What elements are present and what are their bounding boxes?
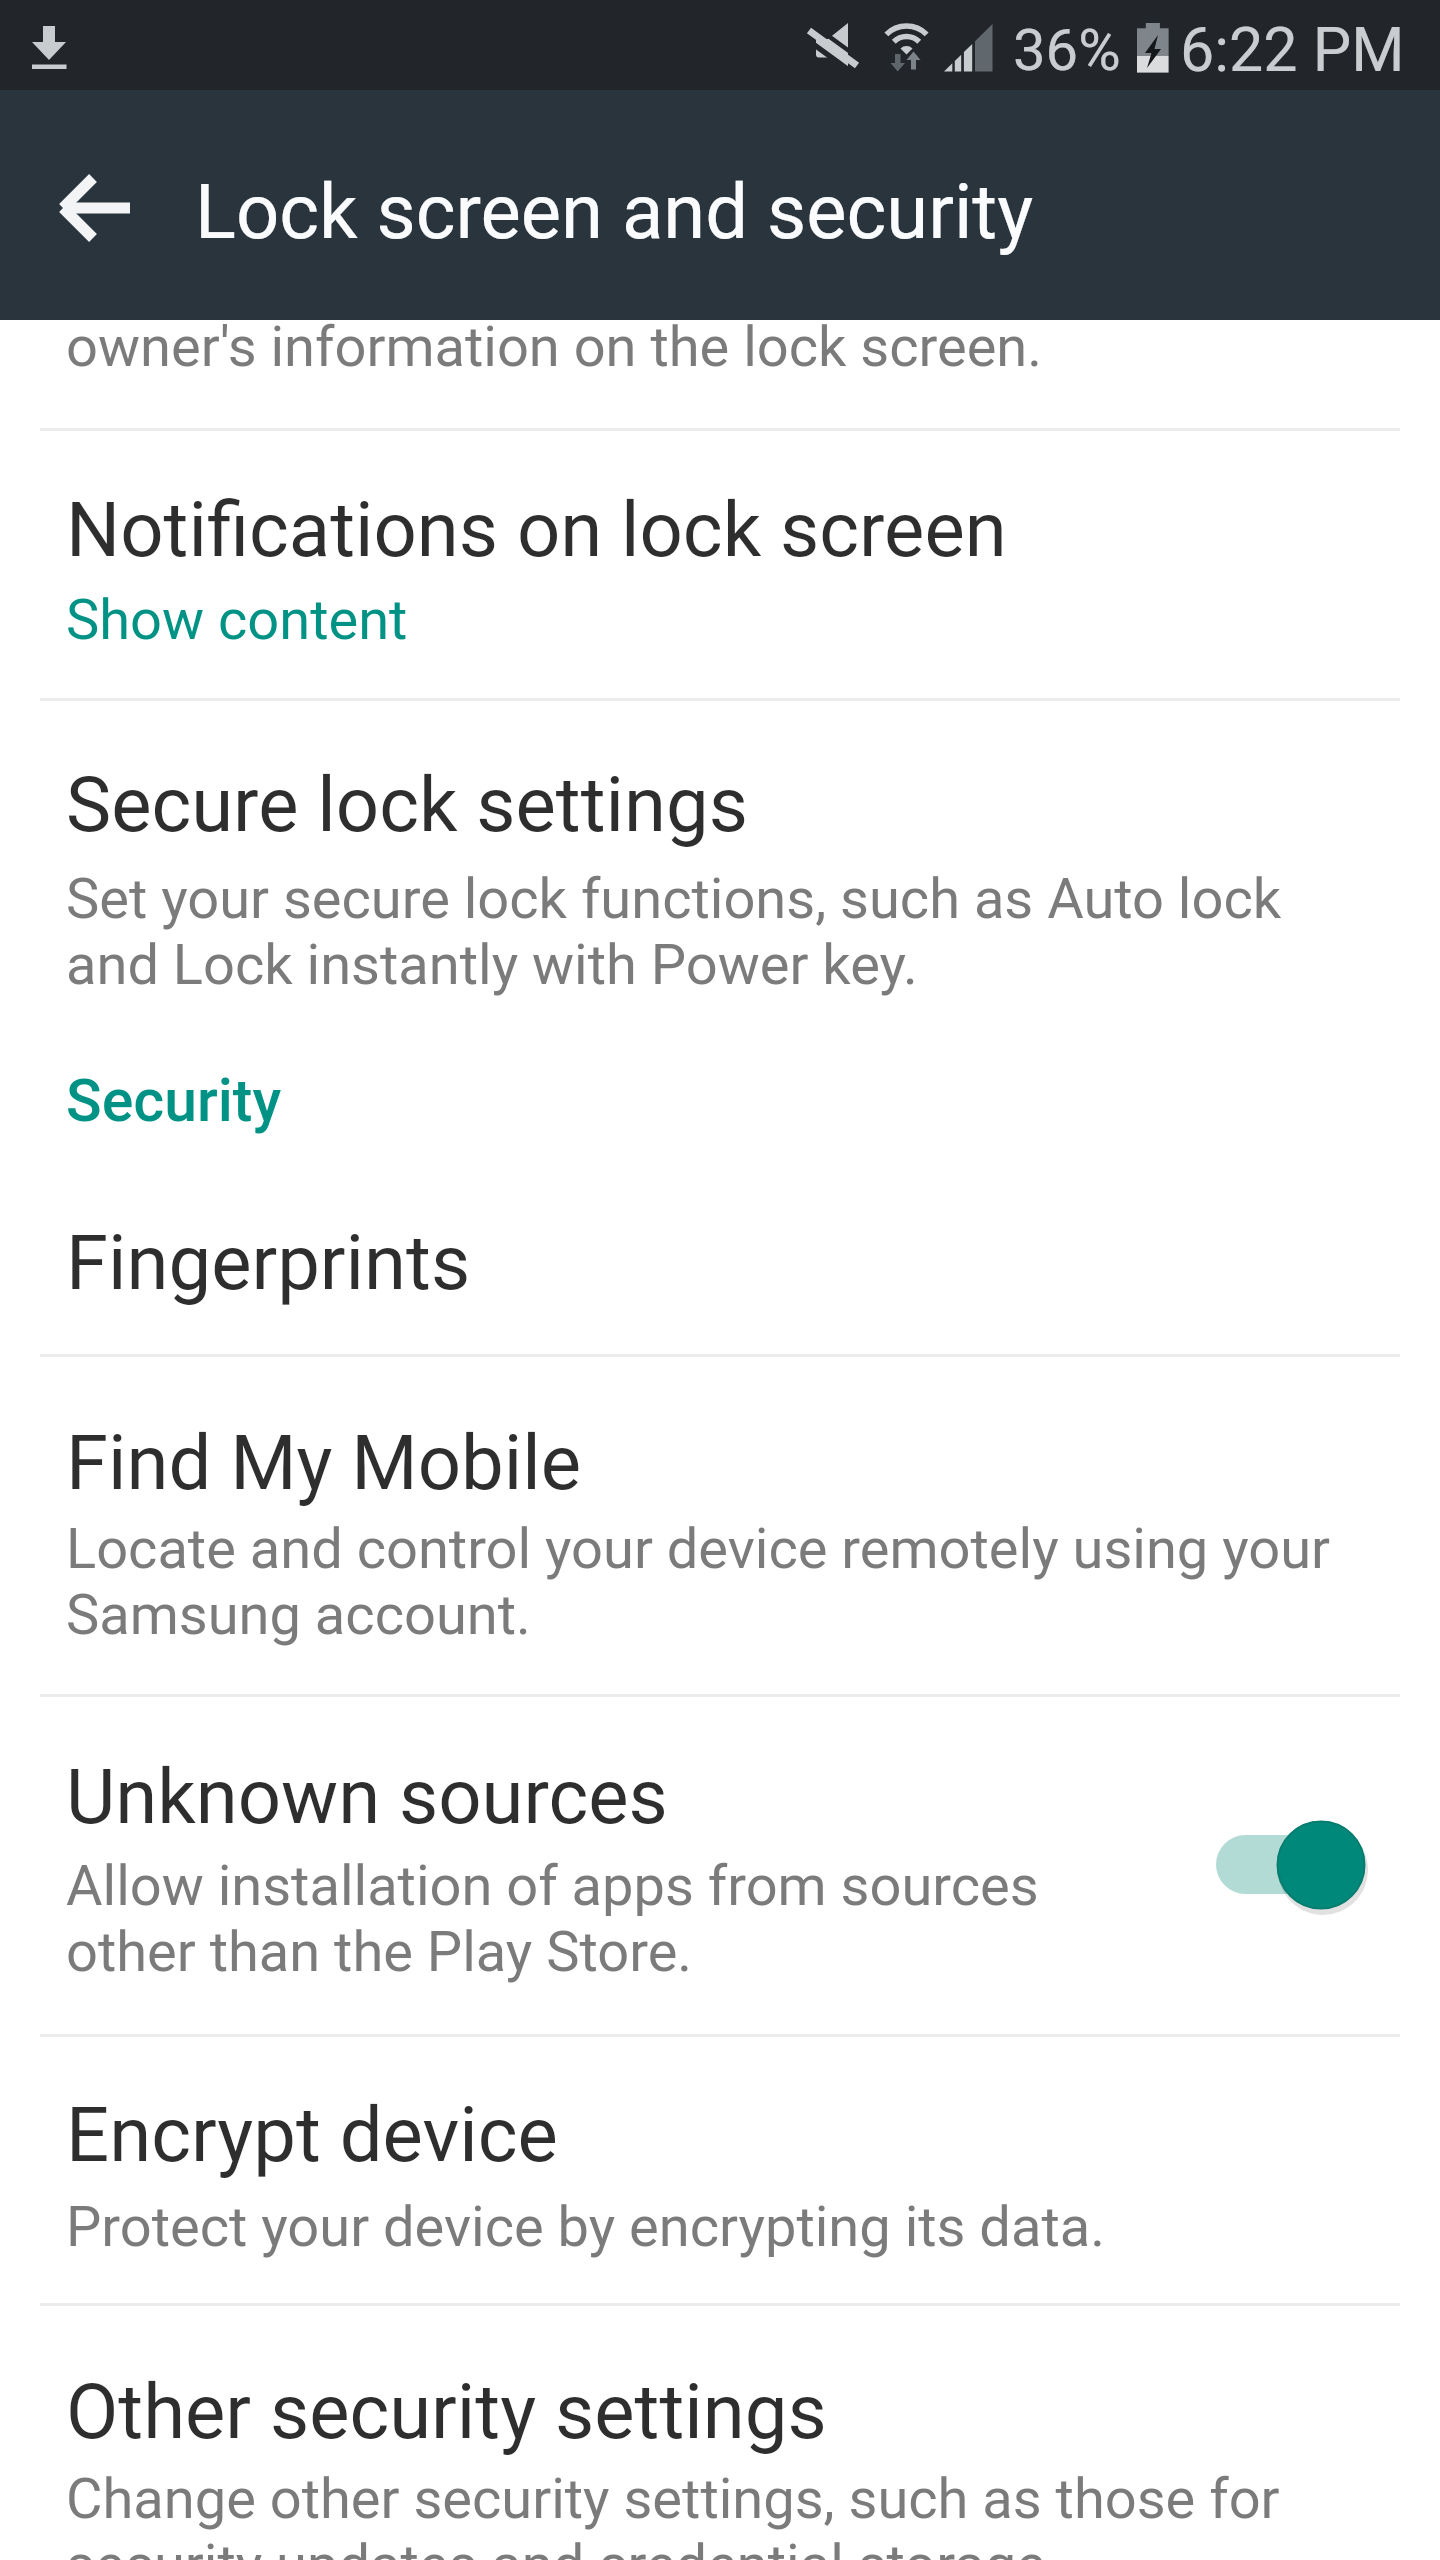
staticText: Fingerprints — [66, 1218, 471, 1307]
button[interactable]: Notifications on lock screen — [0, 431, 1440, 698]
staticText: Unknown sources — [66, 1752, 668, 1841]
button[interactable] — [1216, 1835, 1349, 1894]
staticText: Lock screen and security — [195, 167, 1034, 256]
staticText: Notifications on lock screen — [66, 485, 1007, 574]
button[interactable]: Encrypt device — [0, 2037, 1440, 2303]
staticText: 36% — [1013, 16, 1121, 84]
staticText: Other security settings — [66, 2367, 827, 2456]
button[interactable]: Other security settings — [0, 2306, 1440, 2560]
staticText: Change other security settings, such as … — [66, 2466, 1280, 2560]
staticText: owner's information on the lock screen. — [66, 314, 1043, 380]
button[interactable]: Fingerprints — [0, 1160, 1440, 1354]
staticText: 6:22 PM — [1180, 14, 1405, 85]
staticText: Encrypt device — [66, 2090, 558, 2179]
staticText: Security — [66, 1066, 282, 1135]
staticText: Find My Mobile — [66, 1418, 581, 1507]
button[interactable]: Unknown sources — [0, 1697, 1440, 2034]
button[interactable] — [40, 150, 160, 270]
staticText: Protect your device by encrypting its da… — [66, 2194, 1105, 2260]
staticText: Set your secure lock functions, such as … — [66, 866, 1282, 998]
staticText: Show content — [66, 587, 408, 653]
button[interactable]: Find My Mobile — [0, 1357, 1440, 1694]
staticText: Allow installation of apps from sources … — [66, 1853, 1039, 1985]
staticText: Secure lock settings — [66, 760, 748, 849]
staticText: Locate and control your device remotely … — [66, 1516, 1331, 1648]
button[interactable]: Secure lock settings — [0, 701, 1440, 1040]
